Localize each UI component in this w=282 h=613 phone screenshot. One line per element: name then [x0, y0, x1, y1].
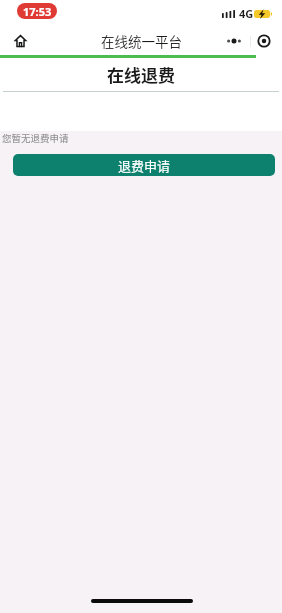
staticText: 退费申请 [118, 156, 171, 175]
staticText: 4G [239, 6, 254, 21]
button[interactable]: Close [251, 31, 277, 51]
staticText: 您暂无退费申请 [2, 131, 69, 145]
button[interactable]: Home [8, 30, 30, 52]
staticText: 17:53 [23, 4, 52, 19]
button[interactable]: 退费申请 [13, 154, 275, 176]
staticText: 在线统一平台 [101, 31, 182, 51]
staticText: 在线退费 [107, 62, 175, 87]
button[interactable]: More options [224, 31, 250, 51]
